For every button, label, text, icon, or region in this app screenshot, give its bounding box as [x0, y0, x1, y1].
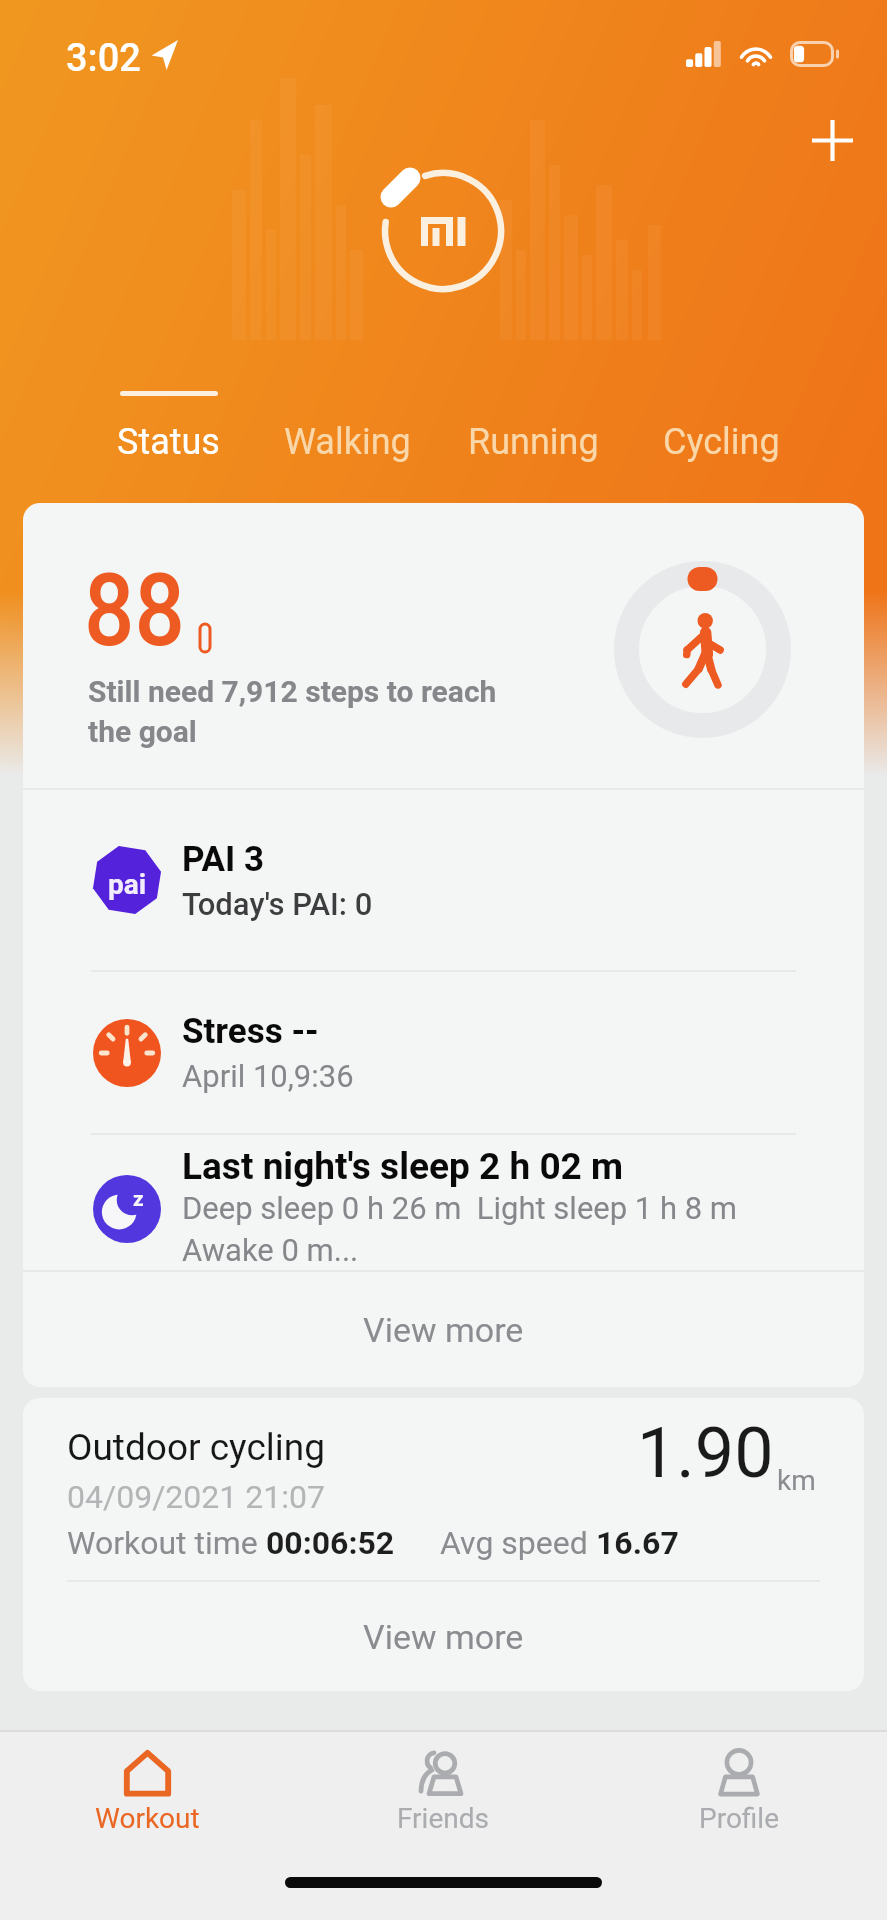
- staticText: Workout: [95, 1802, 200, 1835]
- staticText: 16.67: [596, 1524, 679, 1562]
- staticText: Workout time: [67, 1524, 266, 1562]
- staticText: z: [133, 1187, 144, 1212]
- button[interactable]: pai: [23, 790, 864, 970]
- staticText: Walking: [284, 421, 411, 463]
- button[interactable]: Friends: [295, 1732, 591, 1850]
- staticText: Last night's sleep 2 h 02 m: [182, 1145, 624, 1188]
- staticText: Outdoor cycling: [67, 1426, 325, 1469]
- button[interactable]: Running: [443, 391, 623, 486]
- staticText: 04/09/2021 21:07: [67, 1478, 325, 1516]
- staticText: Stress --: [182, 1011, 319, 1052]
- staticText: Cycling: [663, 421, 780, 463]
- button[interactable]: View more: [23, 1582, 864, 1691]
- staticText: April 10,9:36: [182, 1058, 354, 1094]
- staticText: Profile: [699, 1802, 780, 1835]
- button[interactable]: Status: [78, 391, 258, 486]
- button[interactable]: Cycling: [631, 391, 811, 486]
- button[interactable]: Stress --: [23, 972, 864, 1133]
- staticText: Status: [117, 421, 220, 463]
- staticText: Still need 7,912 steps to reach the goal: [88, 674, 497, 750]
- staticText: View more: [363, 1310, 524, 1350]
- staticText: 88: [84, 551, 185, 669]
- button[interactable]: Outdoor cycling: [23, 1398, 864, 1580]
- staticText: Deep sleep 0 h 26 m Light sleep 1 h 8 m …: [182, 1190, 738, 1269]
- staticText: 00:06:52: [266, 1524, 395, 1562]
- staticText: Running: [468, 421, 599, 463]
- button[interactable]: z: [23, 1135, 864, 1270]
- button[interactable]: View more: [23, 1272, 864, 1387]
- staticText: PAI 3: [182, 839, 265, 880]
- staticText: km: [777, 1464, 816, 1497]
- staticText: View more: [363, 1617, 524, 1657]
- button[interactable]: Workout: [0, 1732, 295, 1850]
- button[interactable]: Walking: [257, 391, 437, 486]
- staticText: Friends: [397, 1802, 489, 1835]
- staticText: Avg speed: [440, 1524, 596, 1562]
- button[interactable]: Add: [795, 103, 869, 177]
- button[interactable]: Profile: [591, 1732, 887, 1850]
- staticText: pai: [108, 868, 147, 901]
- staticText: 3:02: [66, 36, 141, 81]
- staticText: Today's PAI: 0: [182, 886, 373, 922]
- staticText: 1.90: [637, 1412, 774, 1494]
- button[interactable]: 88: [23, 503, 864, 788]
